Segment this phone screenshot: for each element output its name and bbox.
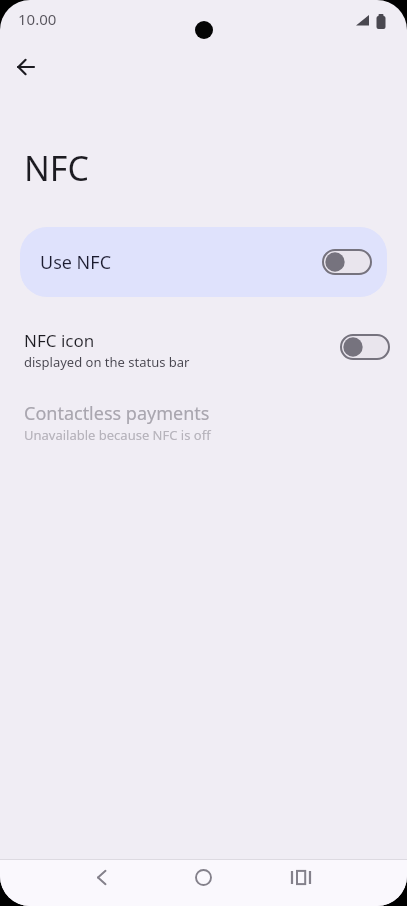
staticText: Contactless payments — [24, 401, 210, 426]
staticText: Use NFC — [40, 250, 112, 275]
button[interactable] — [79, 860, 123, 894]
button[interactable]: Use NFC — [20, 227, 387, 297]
button[interactable]: NFC icon — [0, 315, 407, 379]
staticText: 10.00 — [18, 9, 57, 29]
button[interactable] — [279, 860, 323, 894]
staticText: displayed on the status bar — [24, 353, 190, 371]
button[interactable] — [181, 860, 225, 894]
staticText: NFC icon — [24, 329, 95, 352]
staticText: Unavailable because NFC is off — [24, 426, 211, 444]
button[interactable] — [7, 48, 45, 86]
staticText: NFC — [24, 145, 89, 191]
